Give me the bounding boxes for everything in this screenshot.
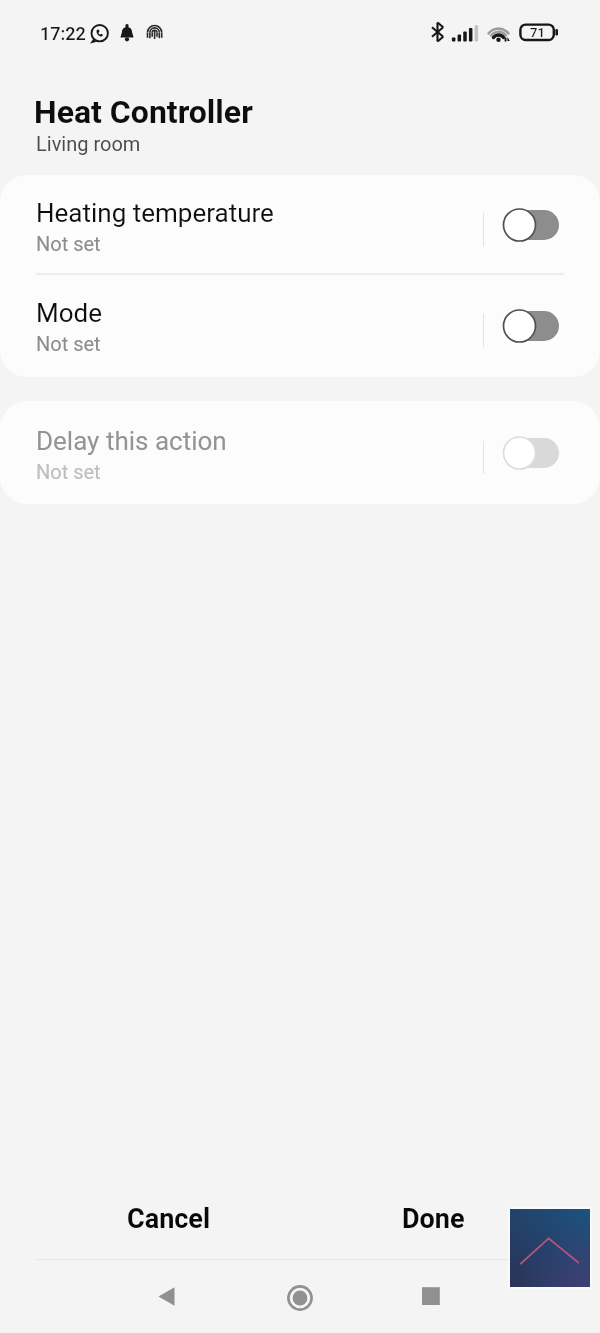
button[interactable]: Recents (407, 1272, 457, 1322)
staticText: 17:22 (40, 23, 86, 44)
staticText: Living room (36, 132, 141, 155)
button[interactable]: Back (142, 1272, 192, 1322)
staticText: Heat Controller (34, 93, 253, 131)
staticText: Heating temperature (36, 198, 274, 228)
button[interactable]: Mode (0, 275, 600, 377)
staticText: Cancel (127, 1203, 211, 1235)
button[interactable]: App preview (510, 1209, 590, 1287)
button[interactable]: Toggle Heating temperature (500, 203, 564, 247)
button[interactable]: Home (275, 1273, 325, 1323)
button[interactable]: Done (304, 1181, 562, 1257)
button[interactable]: Toggle Mode (500, 304, 564, 348)
button[interactable]: Delay this action (0, 401, 600, 504)
staticText: Not set (36, 332, 101, 355)
button[interactable]: Heating temperature (0, 175, 600, 273)
button[interactable]: Toggle Delay this action (500, 431, 564, 475)
button[interactable]: Cancel (34, 1181, 304, 1257)
staticText: Delay this action (36, 426, 227, 456)
staticText: Not set (36, 232, 101, 255)
staticText: Not set (36, 460, 101, 483)
staticText: Done (402, 1203, 465, 1235)
staticText: Mode (36, 298, 102, 328)
staticText: 71 (530, 25, 545, 40)
